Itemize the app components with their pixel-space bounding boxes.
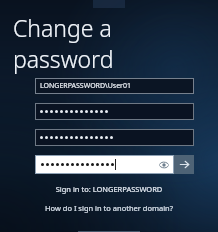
button[interactable]: How do I sign in to another domain? [0,203,218,213]
staticText: Sign in to: LONGERPASSWORD [0,184,218,194]
button[interactable]: Submit [174,155,194,174]
button[interactable]: Reveal password [36,156,173,173]
button[interactable]: LONGERPASSWORD\User01 [35,78,194,94]
button[interactable] [35,129,194,146]
staticText: Change a password [13,12,218,74]
staticText: LONGERPASSWORD\User01 [40,81,131,91]
button[interactable] [35,103,194,120]
button[interactable]: Reveal password [157,158,170,171]
